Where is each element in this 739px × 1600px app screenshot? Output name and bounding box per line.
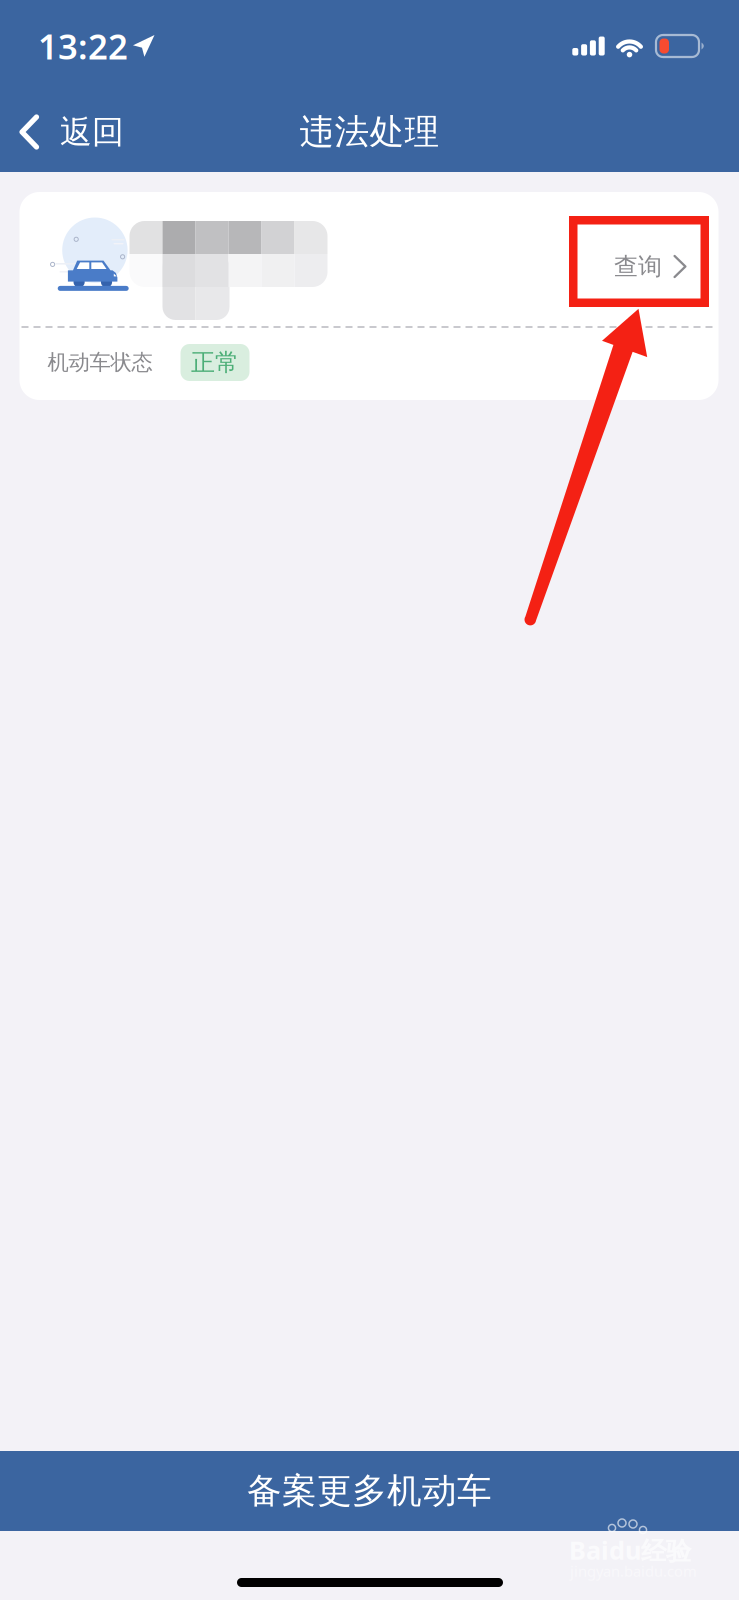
- staticText: 返回: [60, 112, 124, 152]
- staticText: 13:22: [38, 23, 128, 69]
- staticText: 正常: [191, 348, 239, 377]
- button[interactable]: 备案更多机动车: [0, 1451, 739, 1531]
- staticText: 查询: [614, 252, 662, 281]
- staticText: 机动车状态: [47, 349, 152, 376]
- staticText: 备案更多机动车: [247, 1470, 492, 1512]
- staticText: 违法处理: [299, 111, 439, 153]
- button[interactable]: 返回: [0, 92, 138, 172]
- button[interactable]: 查询: [581, 221, 719, 312]
- staticText: Baidu经验: [569, 1533, 691, 1567]
